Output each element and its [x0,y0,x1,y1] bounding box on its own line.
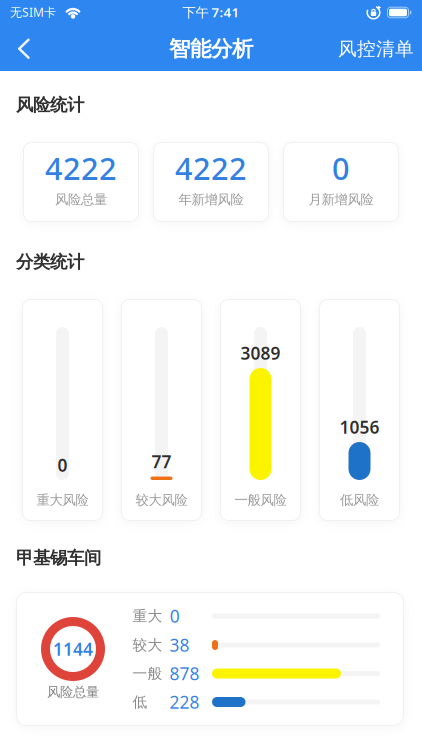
staticText: 甲基锡车间 [16,547,101,569]
staticText: 较大 [132,636,162,654]
staticText: 重大风险 [36,492,88,508]
staticText: 风险统计 [16,94,84,116]
staticText: 0 [170,604,180,627]
staticText: 一般 [132,664,162,682]
staticText: 重大 [132,607,162,625]
staticText: 228 [169,690,199,713]
staticText: 低 [133,693,148,711]
staticText: 一般风险 [234,492,286,508]
staticText: 38 [170,633,190,656]
staticText: 4222 [45,148,117,188]
staticText: 77 [151,450,171,473]
button[interactable]: Back [4,26,44,72]
staticText: 1056 [339,415,379,438]
staticText: 月新增风险 [308,191,373,208]
staticText: 0 [57,453,67,476]
staticText: 下午 7:41 [182,3,239,21]
staticText: 风险总量 [55,191,107,208]
staticText: 4222 [175,148,247,188]
staticText: 风控清单 [338,37,414,60]
staticText: 0 [332,148,350,188]
button[interactable]: 风控清单 [338,26,414,72]
staticText: 低风险 [340,492,379,508]
staticText: 风险总量 [47,684,99,700]
staticText: 1144 [53,637,93,660]
staticText: 智能分析 [169,36,253,62]
staticText: 878 [169,662,199,685]
staticText: 年新增风险 [178,191,243,208]
staticText: 3089 [240,341,280,364]
staticText: 分类统计 [16,251,84,273]
staticText: 无SIM卡 [10,4,56,20]
staticText: 较大风险 [135,492,187,508]
